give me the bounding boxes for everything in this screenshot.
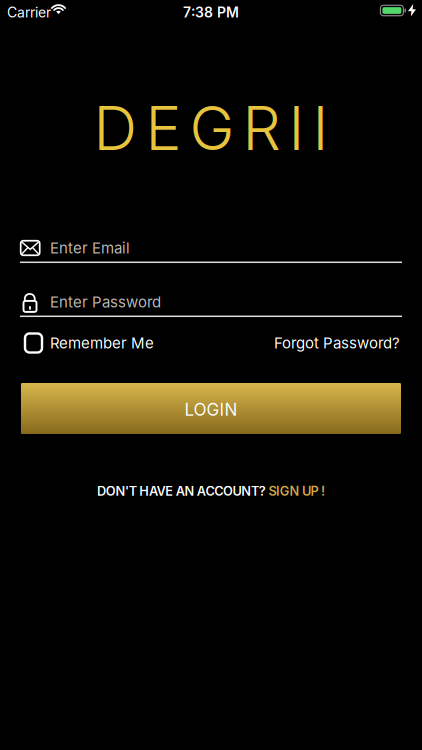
staticText: 7:38 PM [183, 4, 239, 21]
staticText: Remember Me [50, 334, 154, 352]
button[interactable]: Remember Me [25, 333, 154, 352]
button[interactable]: SIGN UP ! [268, 483, 325, 499]
staticText: LOGIN [184, 399, 237, 420]
button[interactable]: Enter Email [20, 234, 402, 270]
staticText: SIGN UP ! [268, 483, 325, 499]
staticText: DON'T HAVE AN ACCOUNT? [97, 483, 268, 499]
button[interactable]: Forgot Password? [200, 334, 400, 352]
staticText: Forgot Password? [274, 334, 400, 352]
button[interactable]: Enter Password [20, 288, 402, 324]
staticText: DEGRII [93, 91, 328, 165]
staticText: Carrier [7, 4, 51, 21]
button[interactable]: LOGIN [21, 383, 401, 434]
staticText: Enter Password [50, 293, 161, 311]
staticText: Enter Email [50, 239, 130, 257]
